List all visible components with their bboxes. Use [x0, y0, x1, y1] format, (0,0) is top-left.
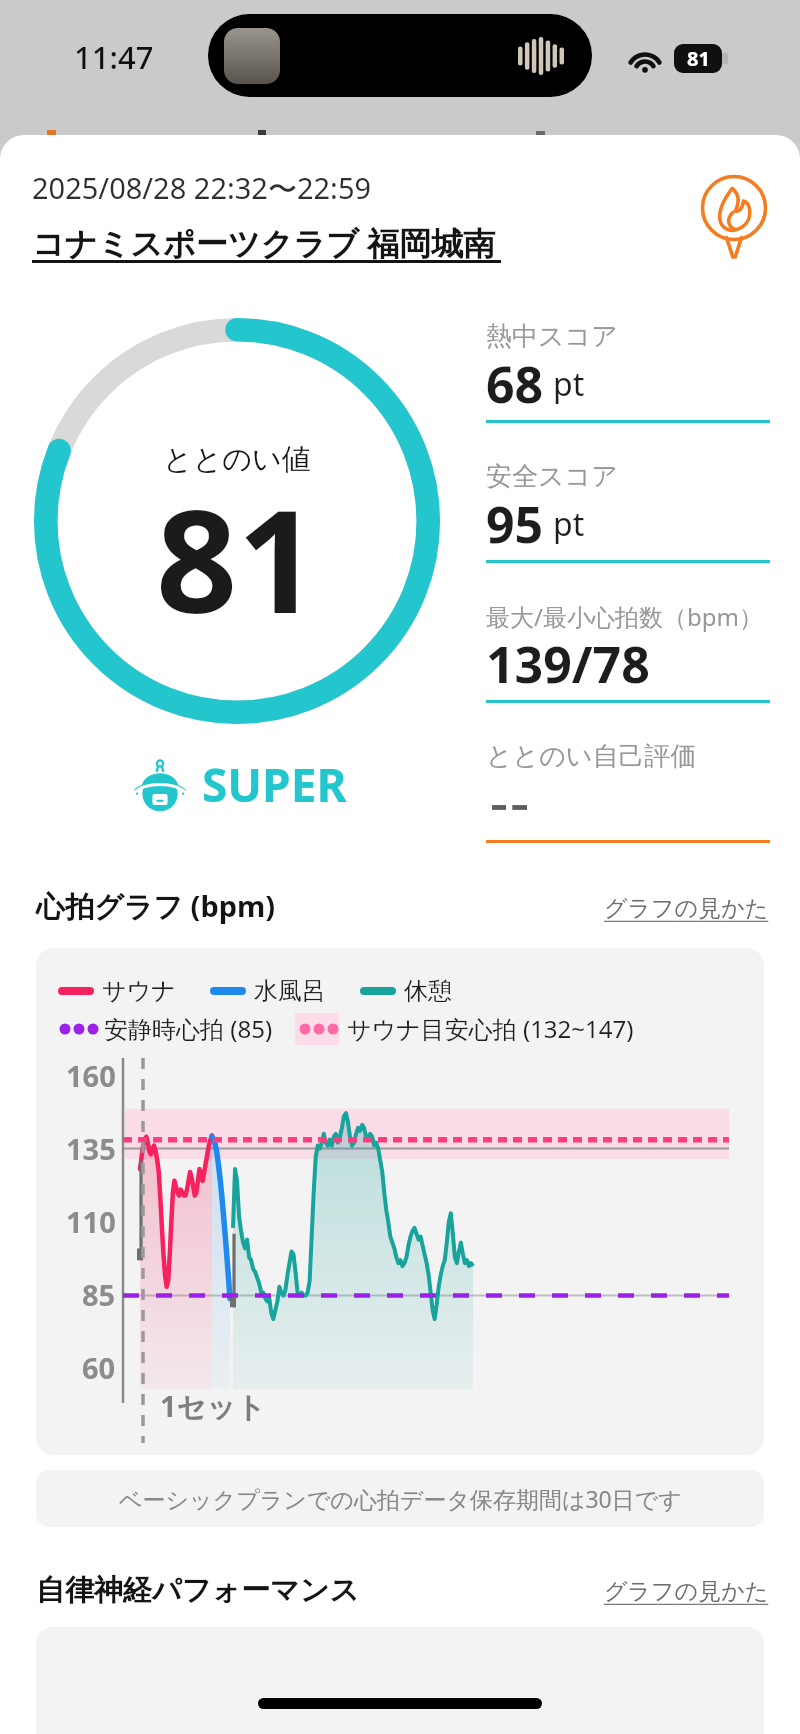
staticText: 休憩 — [404, 976, 452, 1006]
staticText: 81 — [687, 45, 710, 72]
staticText: 安静時心拍 (85) — [104, 1012, 273, 1045]
staticText: ととのい自己評価 — [486, 740, 697, 773]
staticText: SUPER — [202, 753, 347, 816]
staticText: 熱中スコア — [486, 320, 618, 353]
staticText: 自律神経パフォーマンス — [36, 1572, 360, 1609]
staticText: 81 — [156, 461, 319, 654]
staticText: 水風呂 — [254, 976, 326, 1006]
staticText: 85 — [82, 1275, 116, 1313]
staticText: ととのい値 — [163, 441, 311, 478]
staticText: サウナ — [102, 976, 176, 1006]
staticText: サウナ目安心拍 (132~147) — [347, 1012, 634, 1045]
staticText: 160 — [66, 1056, 116, 1094]
staticText: 心拍グラフ (bpm) — [36, 886, 276, 926]
staticText: 1セット — [160, 1386, 266, 1426]
staticText: 11:47 — [74, 36, 154, 78]
staticText: ベーシックプランでの心拍データ保存期間は30日です — [119, 1483, 682, 1514]
staticText: コナミスポーツクラブ 福岡城南 — [32, 221, 496, 265]
staticText: 139/78 — [486, 630, 650, 690]
staticText: pt — [553, 502, 585, 546]
staticText: 95 — [486, 490, 544, 550]
staticText: グラフの見かた — [604, 894, 769, 923]
staticText: 2025/08/28 22:32〜22:59 — [32, 168, 372, 208]
staticText: 最大/最小心拍数（bpm） — [486, 600, 763, 633]
staticText: 110 — [66, 1202, 116, 1240]
staticText: グラフの見かた — [604, 1577, 769, 1606]
staticText: 安全スコア — [486, 460, 618, 493]
staticText: pt — [553, 362, 585, 406]
staticText: 60 — [82, 1348, 116, 1386]
staticText: 68 — [486, 350, 544, 410]
button[interactable]: グラフの見かた — [604, 1577, 769, 1609]
staticText: 135 — [66, 1129, 116, 1167]
button[interactable]: グラフの見かた — [604, 894, 769, 926]
button[interactable]: Sauna location — [684, 168, 784, 268]
